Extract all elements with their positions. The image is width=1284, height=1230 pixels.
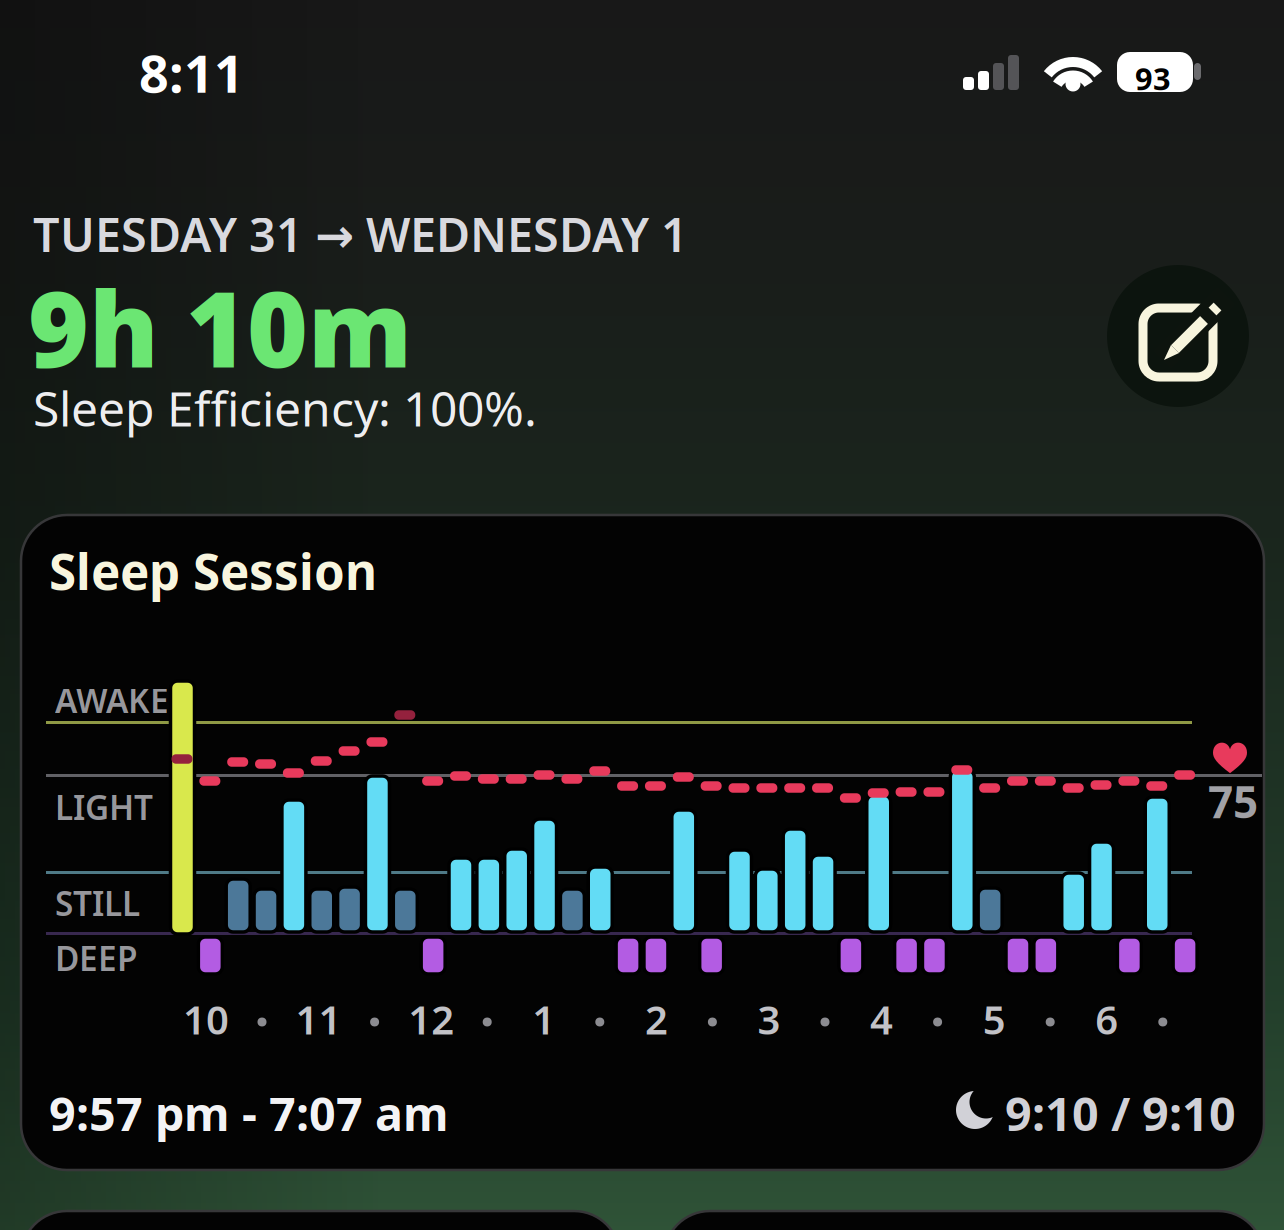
- staticText: 3: [757, 992, 780, 1045]
- staticText: 9:10 / 9:10: [1005, 1082, 1236, 1144]
- staticText: 9h 10m: [28, 258, 412, 396]
- staticText: 2: [645, 992, 668, 1045]
- button[interactable]: [0, 0, 1284, 1230]
- staticText: 10: [183, 992, 229, 1045]
- staticText: TUESDAY 31 → WEDNESDAY 1: [33, 203, 688, 265]
- staticText: Sleep Session: [49, 538, 377, 603]
- staticText: 9:57 pm - 7:07 am: [49, 1082, 449, 1144]
- staticText: 93: [1135, 58, 1171, 99]
- staticText: 75: [1208, 772, 1258, 830]
- staticText: 4: [870, 992, 893, 1045]
- staticText: 6: [1095, 992, 1118, 1045]
- staticText: LIGHT: [55, 785, 153, 829]
- staticText: 11: [296, 992, 342, 1045]
- staticText: AWAKE: [55, 678, 169, 722]
- button[interactable]: [0, 0, 1284, 1230]
- staticText: 5: [983, 992, 1006, 1045]
- staticText: 8:11: [139, 38, 244, 107]
- staticText: 1: [532, 992, 555, 1045]
- button[interactable]: [0, 0, 1284, 1230]
- staticText: Sleep Efficiency: 100%.: [33, 376, 537, 440]
- staticText: DEEP: [55, 936, 138, 980]
- staticText: STILL: [55, 881, 140, 925]
- staticText: 12: [408, 992, 454, 1045]
